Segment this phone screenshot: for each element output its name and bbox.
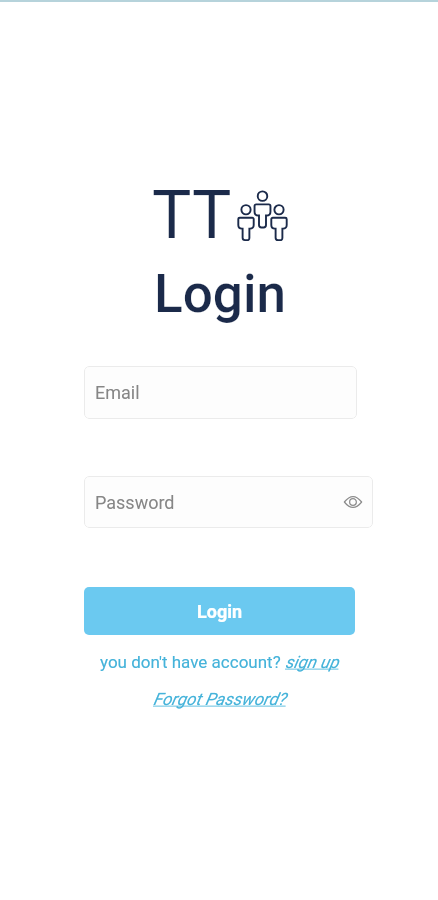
staticText: TT (152, 177, 232, 254)
button[interactable]: sign up (285, 652, 339, 672)
button[interactable]: Login (84, 587, 355, 635)
staticText: you don't have account? (100, 652, 285, 672)
staticText: sign up (285, 652, 339, 672)
staticText: Email (95, 382, 140, 403)
other: Team logo (237, 192, 287, 242)
button[interactable]: Show password (341, 490, 365, 514)
staticText: Forgot Password? (153, 689, 286, 709)
button[interactable]: Forgot Password? (153, 689, 286, 709)
button[interactable]: Password (84, 476, 373, 528)
button[interactable]: Email (84, 366, 357, 419)
staticText: Login (197, 601, 243, 622)
staticText: Password (95, 492, 175, 513)
staticText: Login (154, 263, 286, 325)
